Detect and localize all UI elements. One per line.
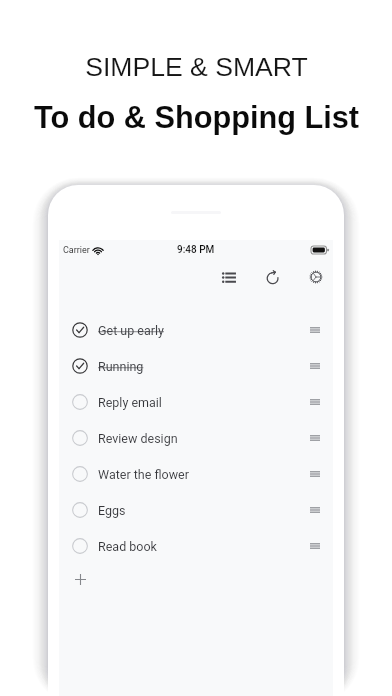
button[interactable]: Read book	[59, 528, 333, 564]
staticText: Eggs	[98, 503, 126, 518]
staticText: Review design	[98, 431, 178, 446]
staticText: Carrier	[63, 245, 90, 256]
button[interactable]: Settings	[301, 262, 331, 292]
button[interactable]: Running	[59, 348, 333, 384]
staticText: To do & Shopping List	[34, 100, 359, 134]
button[interactable]: Reply email	[59, 384, 333, 420]
staticText: Read book	[98, 539, 157, 554]
staticText: SIMPLE & SMART	[85, 52, 308, 82]
staticText: 9:48 PM	[177, 244, 215, 256]
staticText: Reply email	[98, 395, 162, 410]
button[interactable]: Add task	[59, 564, 333, 594]
button[interactable]: Lists	[213, 262, 243, 292]
button[interactable]: Eggs	[59, 492, 333, 528]
staticText: Running	[98, 359, 144, 374]
button[interactable]: Water the flower	[59, 456, 333, 492]
staticText: Get up early	[98, 323, 164, 338]
staticText: Water the flower	[98, 467, 189, 482]
button[interactable]: Refresh	[258, 262, 288, 292]
button[interactable]: Get up early	[59, 312, 333, 348]
button[interactable]: Review design	[59, 420, 333, 456]
